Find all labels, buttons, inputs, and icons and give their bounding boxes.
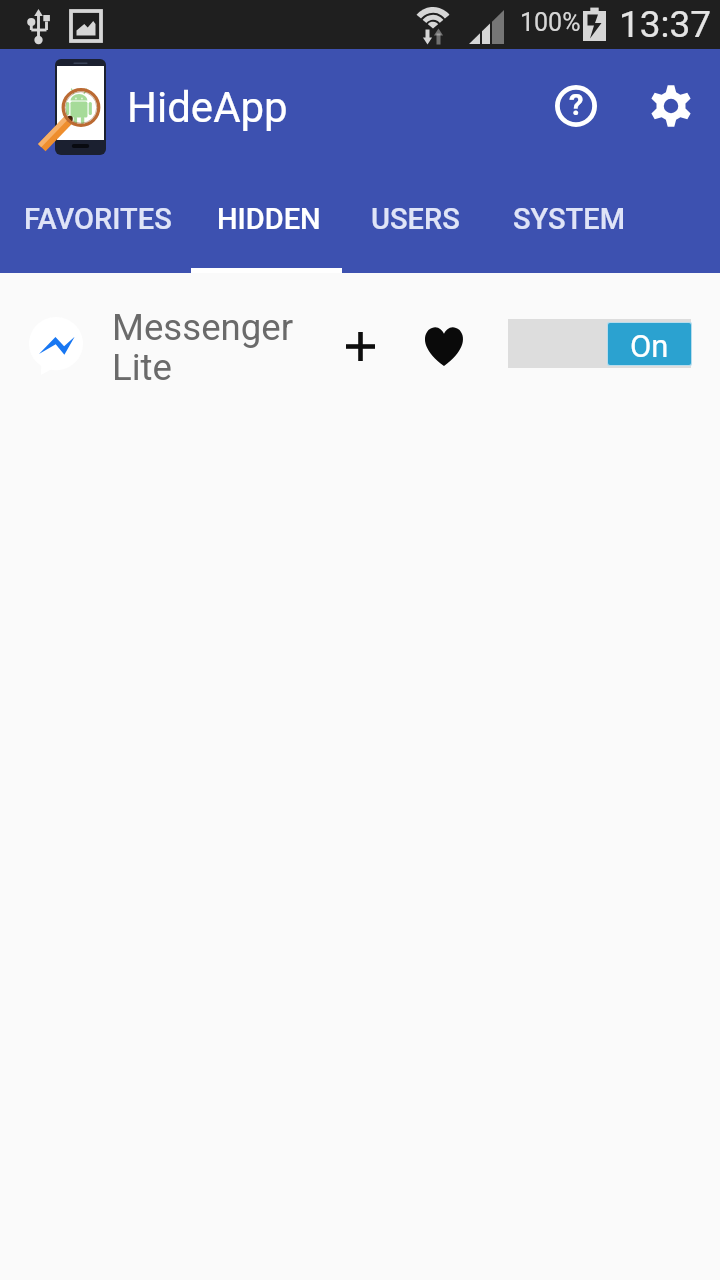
button[interactable]: FAVORITES [2, 171, 194, 273]
button[interactable]: USERS [341, 171, 489, 273]
button[interactable]: Hide app toggle, On [508, 319, 691, 368]
button[interactable]: SYSTEM [487, 171, 651, 273]
staticText: 100% [520, 8, 581, 37]
staticText: On [630, 328, 669, 364]
button[interactable]: HIDDEN [193, 171, 345, 273]
staticText: SYSTEM [513, 202, 626, 236]
button[interactable]: Messenger Lite [0, 288, 318, 392]
staticText: USERS [371, 202, 460, 236]
staticText: 13:37 [619, 3, 712, 46]
button[interactable]: Add [324, 310, 396, 382]
staticText: HideApp [127, 83, 288, 132]
staticText: ? [569, 88, 584, 122]
staticText: FAVORITES [24, 202, 172, 236]
button[interactable]: Settings [633, 68, 709, 144]
staticText: HIDDEN [217, 202, 321, 236]
button[interactable]: Favorite [408, 310, 480, 382]
button[interactable]: Help [538, 68, 614, 144]
staticText: Messenger Lite [112, 306, 308, 389]
